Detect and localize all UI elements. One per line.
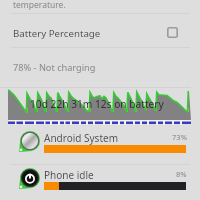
staticText: Phone idle xyxy=(44,168,94,182)
staticText: Android System xyxy=(44,131,119,145)
staticText: temperature. xyxy=(13,0,66,11)
button[interactable]: Phone idle xyxy=(0,165,200,200)
staticText: Battery Percentage xyxy=(13,27,101,40)
staticText: 73% xyxy=(172,132,187,142)
button[interactable]: Android System xyxy=(0,128,200,164)
staticText: 8% xyxy=(176,169,187,179)
staticText: 78% - Not charging xyxy=(13,61,96,74)
button[interactable]: Battery Percentage xyxy=(0,14,200,47)
other: Battery percentage checkbox xyxy=(167,27,178,38)
staticText: 10d 22h 31m 12s on battery xyxy=(30,97,164,111)
